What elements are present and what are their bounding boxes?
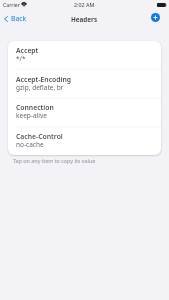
staticText: gzip, deflate, br bbox=[16, 83, 64, 92]
staticText: no-cache bbox=[16, 140, 44, 149]
button[interactable]: Connection bbox=[8, 98, 161, 127]
button[interactable]: Cache-Control bbox=[8, 127, 161, 155]
staticText: Accept-Encoding bbox=[16, 75, 72, 84]
staticText: Carrier bbox=[3, 2, 20, 9]
button[interactable]: Add header bbox=[151, 13, 160, 22]
button[interactable]: Accept bbox=[8, 41, 161, 70]
staticText: Accept bbox=[16, 46, 39, 55]
staticText: Cache-Control bbox=[16, 132, 63, 141]
staticText: 2:02 AM bbox=[74, 1, 95, 8]
staticText: keep-alive bbox=[16, 111, 47, 120]
staticText: */* bbox=[16, 54, 26, 63]
staticText: Connection bbox=[16, 103, 54, 112]
staticText: Tap on any item to copy its value bbox=[13, 157, 96, 164]
button[interactable]: Accept-Encoding bbox=[8, 70, 161, 99]
button[interactable]: Back bbox=[2, 12, 29, 25]
staticText: Back bbox=[11, 14, 27, 23]
staticText: Headers bbox=[71, 15, 98, 24]
